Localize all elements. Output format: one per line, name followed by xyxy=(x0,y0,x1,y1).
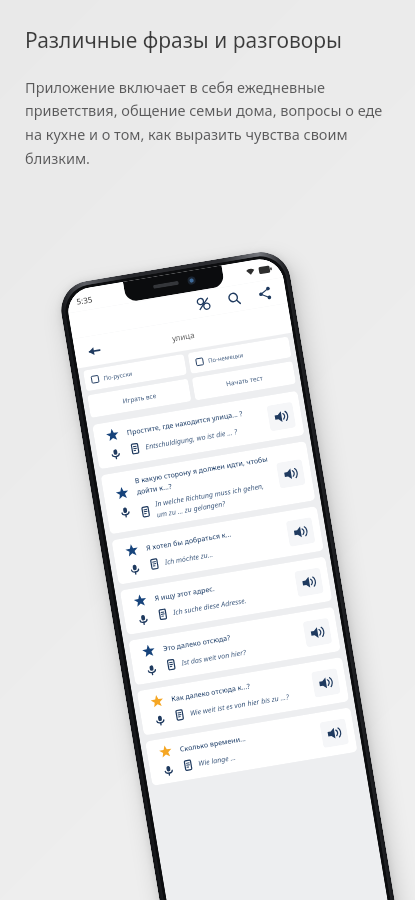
staticText: Я хотел бы добраться к... xyxy=(145,529,233,554)
staticText: По-немецки xyxy=(207,351,244,365)
button[interactable]: Play pronunciation xyxy=(266,402,296,431)
staticText: Wie lange ... xyxy=(198,753,237,769)
staticText: Wie weit ist es von hier bis zu ...? xyxy=(189,692,291,719)
staticText: Как далеко отсюда к...? xyxy=(171,681,251,705)
staticText: Сколько времени... xyxy=(179,734,247,755)
staticText: улица xyxy=(171,329,195,343)
staticText: Это далеко отсюда? xyxy=(162,633,232,654)
button[interactable]: Play pronunciation xyxy=(276,459,306,489)
button[interactable]: Translate xyxy=(191,291,216,316)
button[interactable]: Это далеко отсюда? xyxy=(128,607,341,685)
staticText: Entschuldigung, wo ist die ... ? xyxy=(145,427,238,452)
button[interactable]: Play pronunciation xyxy=(294,567,324,597)
button[interactable]: Back xyxy=(81,338,106,363)
staticText: 5:35 xyxy=(76,293,93,307)
button[interactable]: Я ищу этот адрес. xyxy=(120,556,332,635)
button[interactable]: Играть все xyxy=(87,378,191,418)
staticText: Играть все xyxy=(122,391,157,405)
staticText: По-русски xyxy=(103,369,134,382)
button[interactable]: Search xyxy=(221,286,247,311)
button[interactable]: По-немецки xyxy=(188,336,292,374)
button[interactable]: Как далеко отсюда к...? xyxy=(137,657,349,736)
staticText: Ich suche diese Adresse. xyxy=(172,596,248,618)
staticText: Начать тест xyxy=(225,373,263,388)
button[interactable]: Начать тест xyxy=(192,361,296,400)
button[interactable]: Play pronunciation xyxy=(302,618,332,647)
staticText: В какую сторону я должен идти, чтобы дой… xyxy=(134,454,274,496)
button[interactable]: Я хотел бы добраться к... xyxy=(111,506,324,585)
staticText: Я ищу этот адрес. xyxy=(154,584,216,604)
staticText: Ich möchte zu... xyxy=(164,550,214,568)
button[interactable]: Простите, где находится улица... ? xyxy=(92,391,305,469)
staticText: Ist das weit von hier? xyxy=(181,648,248,668)
button[interactable]: По-русски xyxy=(83,354,187,391)
staticText: Приложение включает в себя ежедневные пр… xyxy=(25,77,395,169)
staticText: Простите, где находится улица... ? xyxy=(126,409,244,438)
button[interactable]: Play pronunciation xyxy=(319,718,349,748)
button[interactable]: Play pronunciation xyxy=(286,517,315,547)
staticText: In welche Richtung muss ich gehen, um zu… xyxy=(154,480,278,519)
button[interactable]: Сколько времени... xyxy=(145,707,358,786)
staticText: Различные фразы и разговоры xyxy=(25,26,342,55)
button[interactable]: В какую сторону я должен идти, чтобы дой… xyxy=(100,441,316,534)
button[interactable]: Play pronunciation xyxy=(311,668,341,698)
button[interactable]: Share xyxy=(252,281,277,306)
